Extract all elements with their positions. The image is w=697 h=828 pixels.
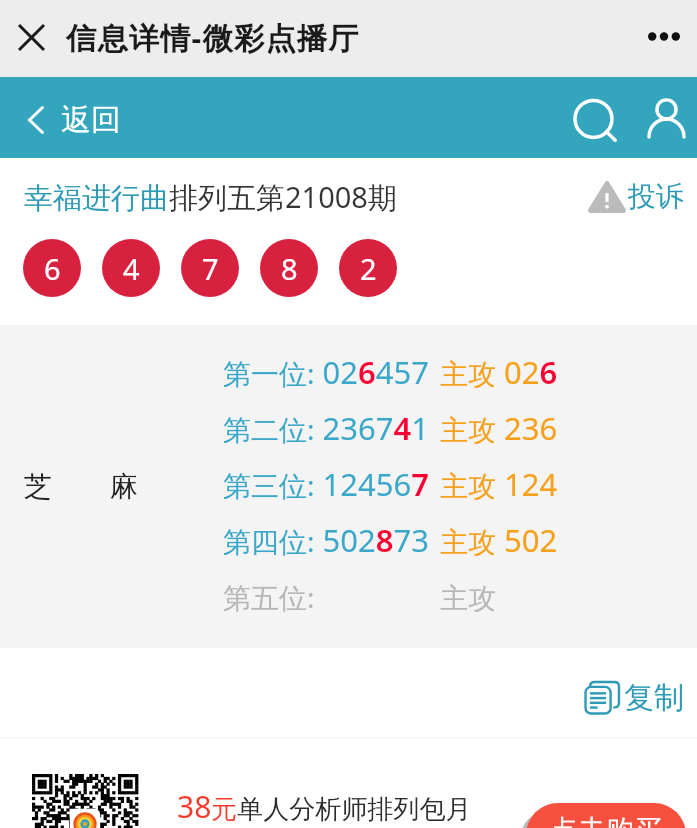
button[interactable]: Profile [630,83,697,155]
staticText: 麻 [110,469,138,504]
staticText: 复制 [624,679,684,717]
staticText: 点击购买 [550,813,662,828]
staticText: 投诉 [628,179,684,214]
staticText: 返回 [61,101,121,139]
staticText: 主攻 026 [440,351,558,393]
staticText: 8 [281,249,298,288]
staticText: 第二位: 236741 [223,407,429,449]
staticText: 芝 [24,469,52,504]
staticText: 38元单人分析师排列包月 [177,786,472,827]
staticText: 主攻 236 [440,407,558,449]
staticText: 主攻 502 [440,519,558,561]
staticText: 6 [44,249,61,288]
staticText: 第四位: 502873 [223,519,429,561]
staticText: 幸福进行曲排列五第21008期 [24,177,397,217]
staticText: 第五位: [223,575,323,617]
button[interactable]: 复制 [574,666,697,720]
staticText: 信息详情-微彩点播厅 [66,17,360,58]
button[interactable]: 返回 [0,87,137,149]
staticText: 4 [123,249,140,288]
button[interactable]: Search [560,85,632,157]
staticText: 第一位: 026457 [223,351,429,393]
staticText: 主攻 [440,575,505,617]
button[interactable]: 投诉 [582,173,697,220]
staticText: 7 [202,249,219,288]
staticText: 第三位: 124567 [223,463,429,505]
button[interactable]: 点击购买 [526,803,686,828]
button[interactable]: More options [632,8,696,70]
staticText: 主攻 124 [440,463,558,505]
staticText: 2 [360,249,377,288]
button[interactable]: Close [2,10,60,68]
